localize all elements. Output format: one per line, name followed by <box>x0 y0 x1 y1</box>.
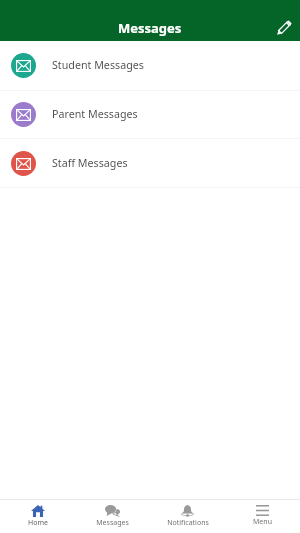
button[interactable]: Compose message <box>267 15 300 41</box>
button[interactable]: Notifications <box>150 500 225 533</box>
staticText: Parent Messages <box>52 107 138 122</box>
button[interactable]: Messages <box>75 500 150 533</box>
staticText: Notifications <box>167 518 209 528</box>
staticText: Menu <box>253 517 272 527</box>
button[interactable]: Parent Messages <box>0 91 300 138</box>
button[interactable]: Staff Messages <box>0 139 300 187</box>
button[interactable]: Student Messages <box>0 41 300 90</box>
button[interactable]: Home <box>0 500 75 533</box>
staticText: Home <box>28 518 48 528</box>
staticText: Messages <box>96 518 129 528</box>
staticText: Staff Messages <box>52 156 128 171</box>
staticText: Student Messages <box>52 58 144 73</box>
button[interactable]: Menu <box>225 500 300 533</box>
staticText: Messages <box>118 19 182 37</box>
